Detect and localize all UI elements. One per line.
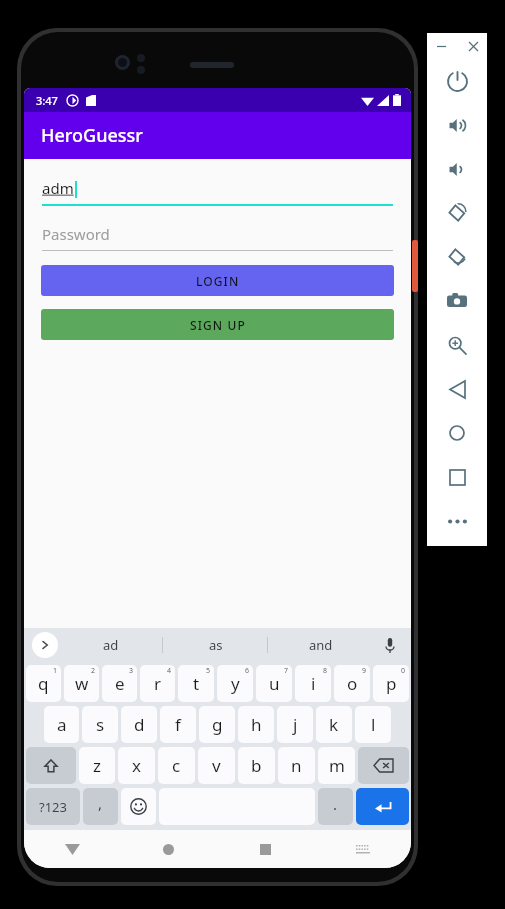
staticText: o [347,672,358,695]
button[interactable]: y [217,665,253,702]
button[interactable]: as [163,628,268,662]
button[interactable]: o [334,665,370,702]
staticText: h [251,713,262,736]
staticText: Password [42,224,110,244]
button[interactable]: LOGIN [41,265,394,296]
button[interactable]: Back [24,830,120,868]
staticText: 4 [167,666,172,676]
staticText: 3:47 [36,93,58,108]
button[interactable]: d [121,706,157,743]
button[interactable]: Volume down [427,147,487,191]
staticText: g [212,713,223,736]
staticText: i [311,672,316,695]
staticText: f [175,713,181,736]
button[interactable]: n [278,747,315,784]
button[interactable]: w [64,665,99,702]
button[interactable]: . [318,788,353,825]
button[interactable]: ?123 [26,788,80,825]
button[interactable]: s [82,706,118,743]
button[interactable]: m [318,747,355,784]
staticText: m [329,754,345,777]
button[interactable]: Back [427,367,487,411]
button[interactable]: adm [42,178,393,206]
staticText: 2 [91,666,96,676]
button[interactable]: Home [427,411,487,455]
button[interactable]: a [44,706,79,743]
staticText: l [371,713,376,736]
button[interactable]: j [277,706,313,743]
button[interactable]: Rotate right [427,235,487,279]
staticText: 7 [284,666,289,676]
button[interactable]: Close [464,37,482,55]
button[interactable]: Screenshot [427,279,487,323]
staticText: k [329,713,339,736]
button[interactable]: Keyboard [314,830,411,868]
button[interactable]: r [140,665,175,702]
button[interactable]: p [373,665,409,702]
staticText: y [231,672,240,695]
button[interactable]: k [316,706,352,743]
button[interactable]: Voice input [373,628,407,662]
staticText: s [96,713,105,736]
staticText: ?123 [39,798,67,816]
staticText: as [209,636,223,654]
button[interactable]: Overview [427,455,487,499]
button[interactable]: Enter [356,788,409,825]
button[interactable]: , [83,788,118,825]
staticText: q [38,672,49,695]
button[interactable]: Home [120,830,217,868]
staticText: 1 [53,666,58,676]
staticText: x [132,754,141,777]
staticText: , [98,793,103,813]
button[interactable]: q [26,665,61,702]
button[interactable]: i [295,665,331,702]
staticText: . [333,794,338,814]
button[interactable]: Rotate left [427,191,487,235]
button[interactable]: c [158,747,195,784]
staticText: HeroGuessr [41,123,143,148]
button[interactable]: and [268,628,373,662]
staticText: c [172,754,181,777]
staticText: d [134,713,145,736]
staticText: ad [103,636,119,654]
button[interactable]: Backspace [358,747,409,784]
button[interactable]: l [355,706,391,743]
button[interactable]: Emoji [121,788,156,825]
button[interactable]: ad [58,628,163,662]
staticText: LOGIN [196,273,240,289]
staticText: 6 [245,666,250,676]
staticText: e [115,672,125,695]
button[interactable]: Volume up [427,103,487,147]
button[interactable]: Shift [26,747,76,784]
button[interactable]: Zoom [427,323,487,367]
staticText: v [212,754,221,777]
button[interactable]: x [118,747,155,784]
staticText: 5 [206,666,211,676]
button[interactable]: z [79,747,115,784]
button[interactable]: Password [42,224,393,251]
button[interactable]: SIGN UP [41,309,394,340]
button[interactable]: f [160,706,196,743]
button[interactable]: e [102,665,137,702]
button[interactable]: More [427,499,487,543]
staticText: w [75,672,89,695]
staticText: SIGN UP [190,317,246,333]
button[interactable]: More suggestions [32,632,58,658]
staticText: n [291,754,302,777]
button[interactable]: h [238,706,274,743]
button[interactable]: v [198,747,235,784]
button[interactable]: Power [427,59,487,103]
button[interactable]: u [256,665,292,702]
button[interactable]: t [178,665,214,702]
button[interactable]: g [199,706,235,743]
staticText: z [93,754,101,777]
staticText: r [154,672,162,695]
button[interactable]: b [238,747,275,784]
staticText: j [293,713,298,736]
button[interactable]: Minimize [432,37,450,55]
staticText: p [386,672,397,695]
staticText: 9 [362,666,367,676]
staticText: and [309,636,333,654]
button[interactable]: Recents [217,830,314,868]
